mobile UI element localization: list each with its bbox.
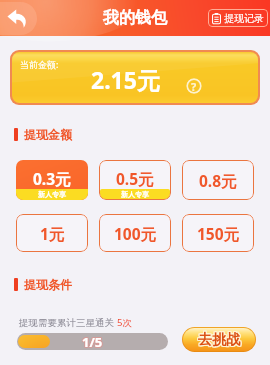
button[interactable]: Help — [186, 78, 202, 94]
staticText: 去挑战 — [199, 330, 241, 348]
staticText: 1/5 — [82, 334, 103, 350]
staticText: 去挑战 — [197, 332, 239, 350]
button[interactable]: 1元 — [16, 214, 88, 252]
staticText: 去挑战 — [198, 332, 240, 350]
button[interactable]: 提现记录 — [208, 9, 268, 27]
staticText: 0.3元 — [33, 168, 71, 189]
staticText: 1元 — [40, 223, 65, 244]
staticText: 去挑战 — [199, 332, 241, 350]
button[interactable]: 0.8元 — [182, 160, 254, 200]
staticText: 1/5 — [81, 334, 102, 350]
staticText: 去挑战 — [197, 331, 239, 349]
staticText: 5次 — [117, 316, 132, 329]
staticText: 0.8元 — [199, 170, 237, 191]
button[interactable]: 去挑战 — [183, 328, 255, 351]
staticText: 去挑战 — [198, 330, 240, 348]
staticText: 去挑战 — [199, 331, 241, 349]
staticText: 0.5元 — [116, 168, 154, 189]
staticText: 1/5 — [83, 334, 104, 350]
staticText: 提现条件 — [24, 277, 72, 292]
staticText: 新人专享 — [121, 190, 149, 199]
staticText: 2.15元 — [91, 64, 160, 95]
staticText: 1/5 — [83, 333, 104, 349]
button[interactable]: 150元 — [182, 214, 254, 252]
staticText: 提现需要累计三星通关 — [19, 316, 117, 329]
staticText: 1/5 — [82, 333, 103, 350]
staticText: 提现记录 — [224, 12, 264, 25]
staticText: 1/5 — [83, 333, 104, 350]
button[interactable]: 100元 — [99, 214, 171, 252]
staticText: 新人专享 — [38, 190, 66, 199]
staticText: 当前金额: — [20, 58, 59, 70]
button[interactable]: 0.3元 — [16, 160, 88, 200]
button[interactable]: 0.5元 — [99, 160, 171, 200]
staticText: 1/5 — [81, 333, 102, 349]
button[interactable]: Back — [0, 2, 37, 35]
staticText: 提现金额 — [24, 127, 72, 142]
staticText: ? — [191, 79, 197, 94]
staticText: 100元 — [114, 223, 157, 244]
staticText: 1/5 — [81, 333, 102, 350]
staticText: 1/5 — [82, 333, 103, 349]
staticText: 我的钱包 — [103, 8, 167, 28]
staticText: 150元 — [197, 223, 240, 244]
staticText: 去挑战 — [198, 331, 240, 349]
staticText: 去挑战 — [197, 330, 239, 348]
